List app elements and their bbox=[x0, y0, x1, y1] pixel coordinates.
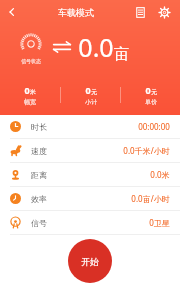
staticText: 距离 bbox=[31, 170, 47, 180]
button[interactable]: 返回 bbox=[0, 0, 24, 24]
button[interactable]: 距离 bbox=[0, 163, 180, 186]
button[interactable]: 0 bbox=[0, 84, 60, 106]
staticText: 0 bbox=[145, 84, 151, 96]
staticText: 车载模式 bbox=[58, 7, 94, 18]
staticText: 小计 bbox=[85, 98, 97, 106]
staticText: 幅宽 bbox=[24, 98, 36, 106]
staticText: 米 bbox=[30, 88, 36, 96]
staticText: 0.0 bbox=[78, 30, 114, 64]
staticText: 0.0米 bbox=[150, 169, 170, 180]
button[interactable]: 切换单位 bbox=[50, 35, 74, 59]
button[interactable]: 速度 bbox=[0, 139, 180, 162]
staticText: 速度 bbox=[31, 146, 47, 156]
staticText: 单价 bbox=[145, 98, 157, 106]
button[interactable]: 0 bbox=[61, 84, 120, 106]
staticText: 00:00:00 bbox=[138, 121, 170, 132]
button[interactable]: 效率 bbox=[0, 187, 180, 210]
staticText: 0 bbox=[24, 84, 30, 96]
button[interactable]: 信号 bbox=[0, 211, 180, 234]
staticText: 0卫星 bbox=[149, 217, 170, 228]
staticText: 信号状态 bbox=[21, 58, 41, 64]
button[interactable]: 开始 bbox=[68, 239, 112, 283]
staticText: 元 bbox=[151, 88, 157, 96]
staticText: 0.0亩/小时 bbox=[131, 193, 170, 204]
staticText: 亩 bbox=[114, 45, 129, 64]
staticText: 信号 bbox=[31, 218, 47, 228]
button[interactable]: 0 bbox=[121, 84, 180, 106]
button[interactable]: 时长 bbox=[0, 115, 180, 138]
button[interactable]: 设置 bbox=[152, 0, 176, 24]
staticText: 0 bbox=[85, 84, 91, 96]
staticText: 元 bbox=[91, 88, 97, 96]
button[interactable]: 记录 bbox=[128, 0, 152, 24]
staticText: 效率 bbox=[31, 194, 47, 204]
staticText: 0.0千米/小时 bbox=[123, 145, 170, 156]
staticText: 时长 bbox=[31, 122, 47, 132]
staticText: 开始 bbox=[81, 256, 99, 267]
